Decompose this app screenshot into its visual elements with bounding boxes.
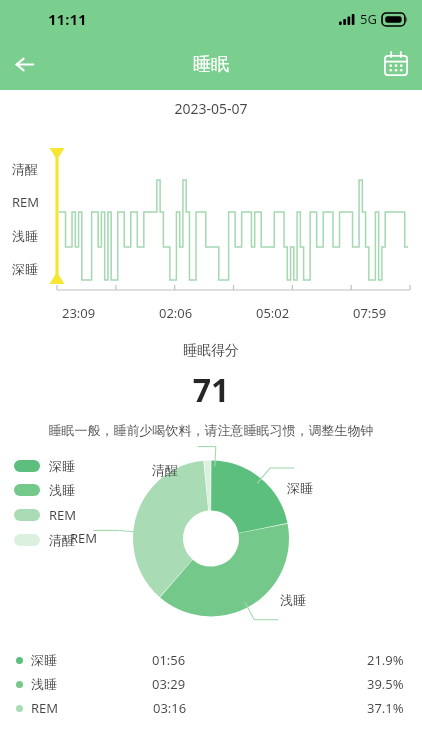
staticText: 深睡 [31,652,57,668]
button[interactable]: REM [0,696,422,720]
staticText: 39.5% [367,675,404,693]
staticText: 清醒 [12,161,38,177]
button[interactable]: 清醒 [14,532,75,548]
button[interactable]: Calendar [370,38,422,90]
button[interactable]: REM [14,506,77,524]
button[interactable]: 浅睡 [14,482,75,498]
staticText: 浅睡 [31,676,57,692]
staticText: 睡眠得分 [0,342,422,360]
button[interactable]: 浅睡 [0,672,422,696]
staticText: 浅睡 [49,482,75,498]
staticText: 01:56 [152,651,186,669]
staticText: 07:59 [353,304,387,322]
staticText: 深睡 [49,458,75,474]
staticText: 浅睡 [280,592,306,608]
staticText: 21.9% [367,651,404,669]
staticText: 02:06 [159,304,193,322]
staticText: REM [12,193,40,211]
staticText: 睡眠 [193,53,229,76]
staticText: 清醒 [152,462,178,478]
button[interactable]: Back [0,40,48,88]
staticText: REM [31,699,59,717]
button[interactable]: 深睡 [0,648,422,672]
staticText: 37.1% [367,699,404,717]
staticText: 2023-05-07 [0,99,422,118]
staticText: REM [70,529,98,547]
staticText: 睡眠一般，睡前少喝饮料，请注意睡眠习惯，调整生物钟 [0,422,422,438]
staticText: 71 [0,368,422,412]
staticText: 清醒 [49,532,75,548]
button[interactable]: 深睡 [14,458,75,474]
staticText: 03:16 [153,699,187,717]
staticText: 浅睡 [12,228,38,244]
staticText: 03:29 [152,675,186,693]
staticText: 深睡 [287,480,313,496]
staticText: 11:11 [48,9,87,29]
staticText: REM [49,506,77,524]
staticText: 23:09 [62,304,96,322]
staticText: 5G [360,10,377,28]
staticText: 深睡 [12,261,38,277]
staticText: 05:02 [256,304,290,322]
